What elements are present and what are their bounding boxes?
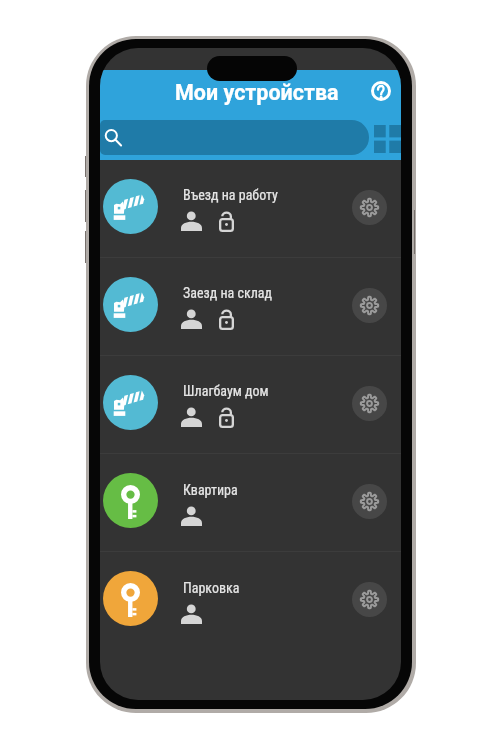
button[interactable]: Парковка bbox=[100, 552, 401, 649]
button[interactable]: Заезд на склад bbox=[100, 258, 401, 355]
staticText: Квартира bbox=[183, 482, 238, 498]
staticText: Въезд на работу bbox=[183, 187, 278, 203]
staticText: Заезд на склад bbox=[183, 285, 273, 301]
button[interactable]: Settings bbox=[352, 386, 387, 421]
button[interactable]: Въезд на работу bbox=[100, 160, 401, 257]
staticText: Шлагбаум дом bbox=[183, 383, 269, 399]
button[interactable] bbox=[100, 120, 369, 155]
button[interactable]: Settings bbox=[352, 582, 387, 617]
button[interactable]: Settings bbox=[352, 484, 387, 519]
staticText: Мои устройства bbox=[175, 80, 339, 105]
button[interactable]: Settings bbox=[352, 288, 387, 323]
button[interactable]: Settings bbox=[352, 190, 387, 225]
button[interactable]: Help bbox=[365, 75, 397, 107]
button[interactable]: Квартира bbox=[100, 454, 401, 551]
button[interactable]: Grid view bbox=[372, 123, 401, 155]
staticText: Парковка bbox=[183, 580, 240, 596]
button[interactable]: Шлагбаум дом bbox=[100, 356, 401, 453]
